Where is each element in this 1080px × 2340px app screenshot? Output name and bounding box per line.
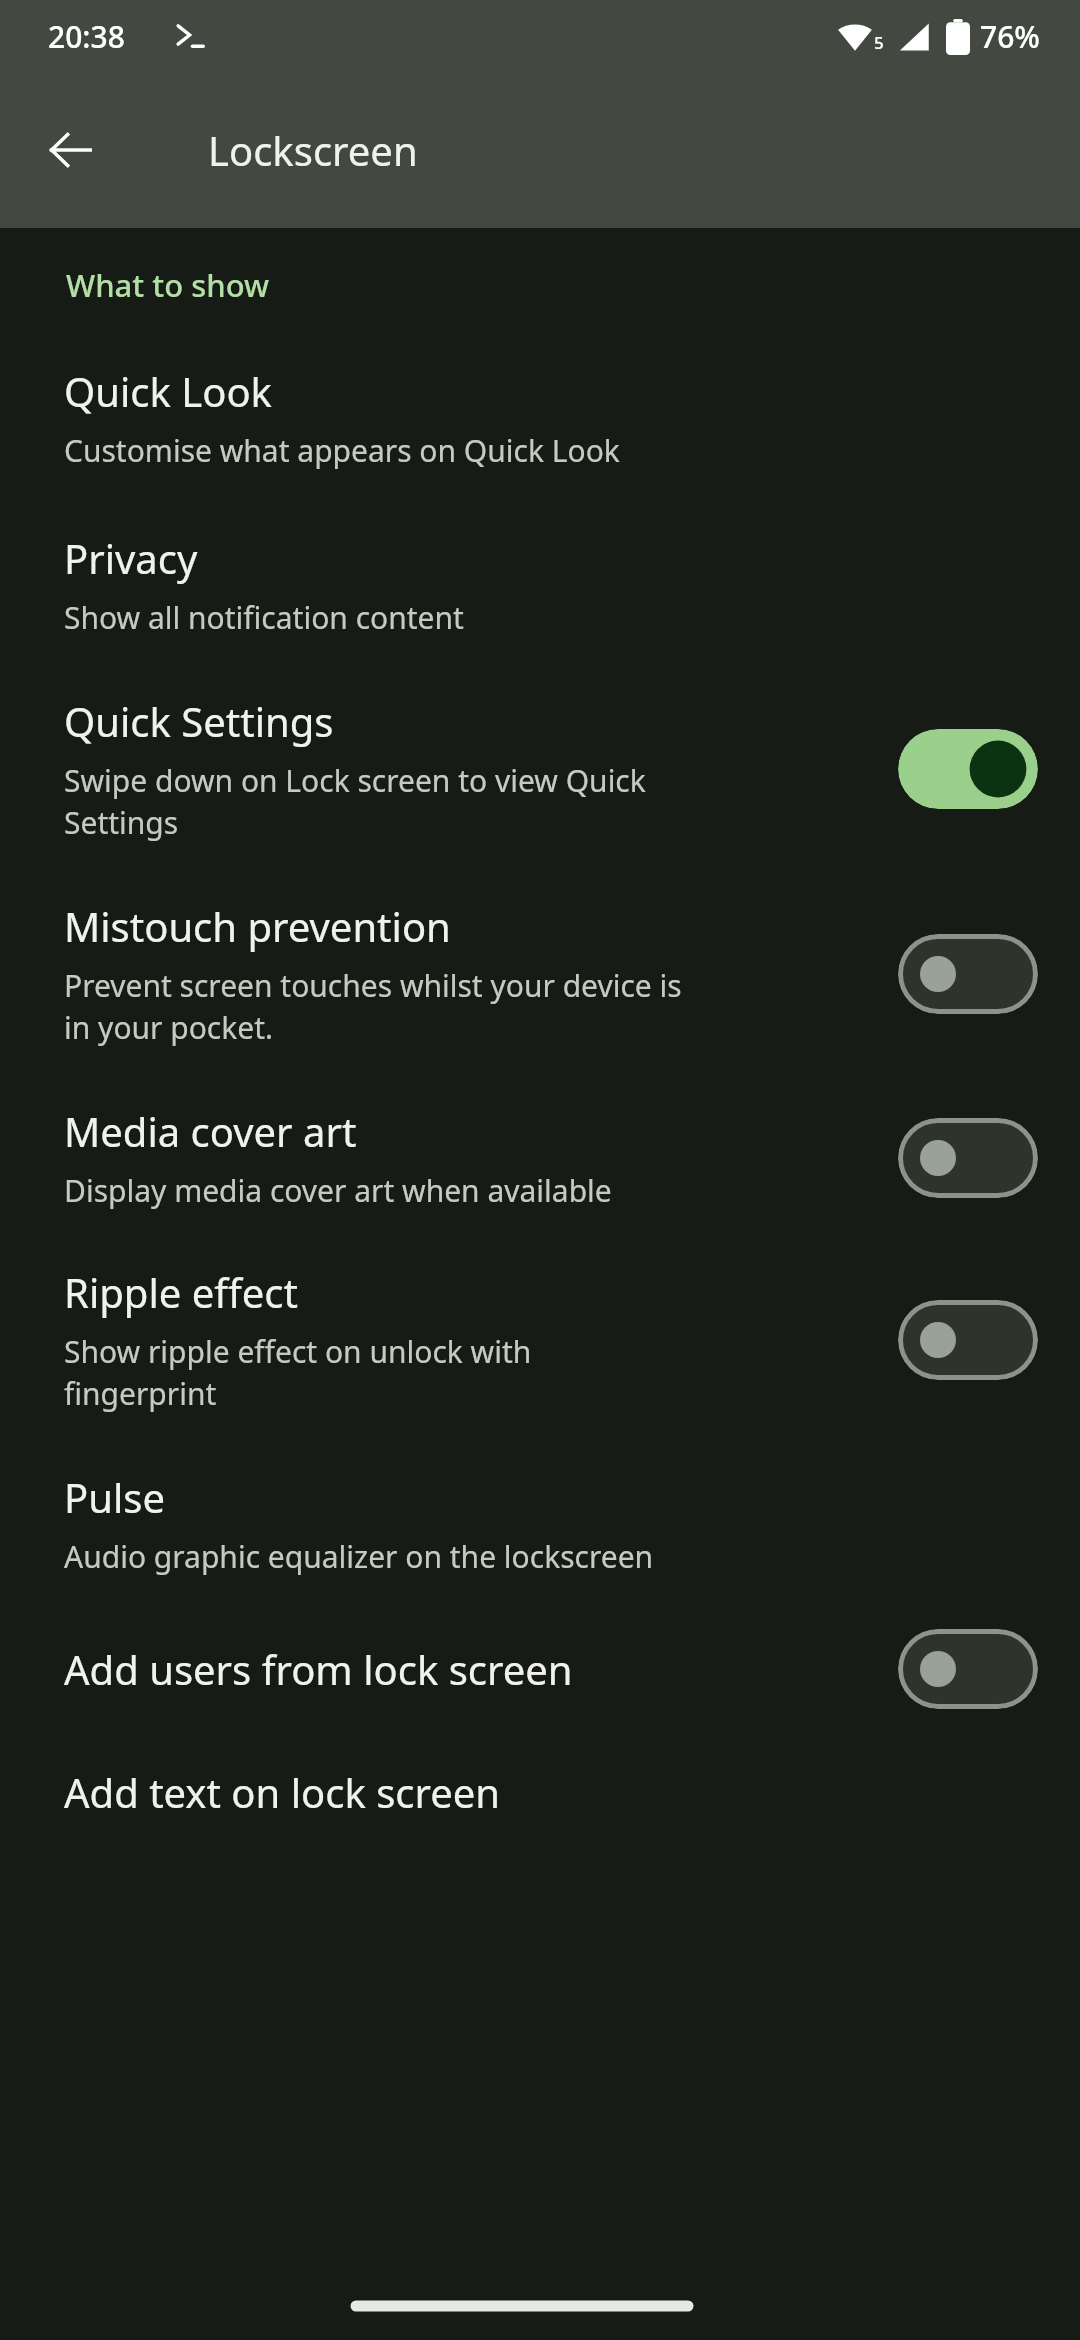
staticText: Pulse bbox=[64, 1470, 165, 1524]
staticText: Quick Look bbox=[64, 364, 272, 418]
button[interactable]: Toggle off bbox=[898, 1118, 1038, 1198]
button[interactable]: Back bbox=[26, 106, 114, 194]
button[interactable]: Pulse bbox=[0, 1414, 1080, 1577]
staticText: Audio graphic equalizer on the lockscree… bbox=[64, 1536, 654, 1577]
button[interactable]: Toggle off bbox=[898, 934, 1038, 1014]
button[interactable]: Quick Look bbox=[0, 306, 1080, 471]
staticText: Quick Settings bbox=[64, 694, 334, 748]
staticText: Customise what appears on Quick Look bbox=[64, 430, 620, 471]
staticText: Show all notification content bbox=[64, 597, 464, 638]
staticText: What to show bbox=[66, 264, 269, 306]
staticText: Swipe down on Lock screen to view Quick … bbox=[64, 760, 646, 843]
button[interactable]: Add users from lock screen bbox=[0, 1577, 1080, 1709]
staticText: 5 bbox=[874, 31, 884, 54]
staticText: 76% bbox=[980, 16, 1040, 57]
button[interactable]: Quick Settings bbox=[0, 638, 1080, 843]
button[interactable]: Privacy bbox=[0, 471, 1080, 638]
button[interactable]: Ripple effect bbox=[0, 1211, 1080, 1414]
staticText: Add text on lock screen bbox=[64, 1765, 501, 1819]
staticText: Prevent screen touches whilst your devic… bbox=[64, 965, 682, 1048]
staticText: Ripple effect bbox=[64, 1265, 298, 1319]
staticText: Privacy bbox=[64, 531, 198, 585]
staticText: Add users from lock screen bbox=[64, 1642, 573, 1696]
staticText: Mistouch prevention bbox=[64, 899, 451, 953]
button[interactable]: Toggle on bbox=[898, 729, 1038, 809]
button[interactable]: Toggle off bbox=[898, 1629, 1038, 1709]
button[interactable]: Media cover art bbox=[0, 1048, 1080, 1211]
staticText: Show ripple effect on unlock with finger… bbox=[64, 1331, 532, 1414]
staticText: Display media cover art when available bbox=[64, 1170, 612, 1211]
button[interactable]: Mistouch prevention bbox=[0, 843, 1080, 1048]
staticText: 20:38 bbox=[48, 16, 125, 57]
button[interactable]: Add text on lock screen bbox=[0, 1709, 1080, 1819]
staticText: Lockscreen bbox=[208, 123, 418, 177]
button[interactable]: Toggle off bbox=[898, 1300, 1038, 1380]
staticText: Media cover art bbox=[64, 1104, 357, 1158]
